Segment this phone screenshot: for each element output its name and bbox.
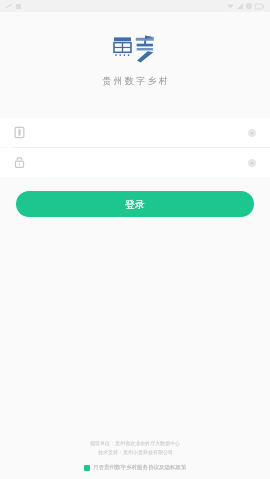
staticText: 只否贵州数字乡村服务协议及隐私政策 xyxy=(93,464,187,471)
button[interactable]: 登录 xyxy=(16,191,254,217)
button[interactable]: Clear Password xyxy=(0,148,270,177)
staticText: 贵 州 数 字 乡 村 xyxy=(102,74,168,86)
button[interactable]: 只否贵州数字乡村服务协议及隐私政策 xyxy=(84,464,187,471)
staticText: 指导单位：贵州省农业农村厅大数据中心 xyxy=(90,440,180,446)
button[interactable]: Clear Password xyxy=(248,159,256,167)
button[interactable]: Clear Account xyxy=(0,118,270,147)
button[interactable]: Clear Account xyxy=(248,129,256,137)
staticText: 技术支持：贵州小贵科技有限公司 xyxy=(98,449,173,455)
staticText: 登录 xyxy=(125,198,145,211)
